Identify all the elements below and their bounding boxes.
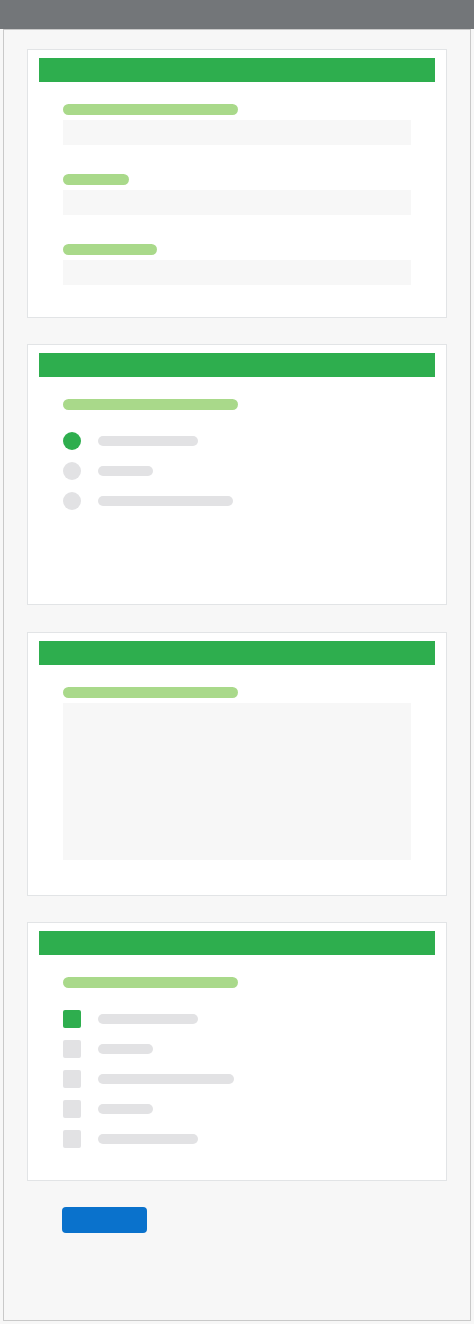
button[interactable]: Checkbox 4 [63,1100,411,1118]
button[interactable]: Checkbox 1 [30,925,444,1178]
button[interactable]: Radio option 1 [30,347,444,602]
button[interactable]: Text area [30,635,444,893]
button[interactable]: Checkbox 1 [63,1010,411,1028]
button[interactable]: Checkbox 3 [63,1070,411,1088]
button[interactable]: Checkbox 5 [63,1130,411,1148]
button[interactable]: Text field 1 [30,52,444,315]
button[interactable]: Checkbox 2 [63,1040,411,1058]
button[interactable]: Submit [62,1207,147,1233]
button[interactable]: Radio option 3 [63,492,411,510]
button[interactable]: Radio option 2 [63,462,411,480]
button[interactable]: Radio option 1 [63,432,411,450]
